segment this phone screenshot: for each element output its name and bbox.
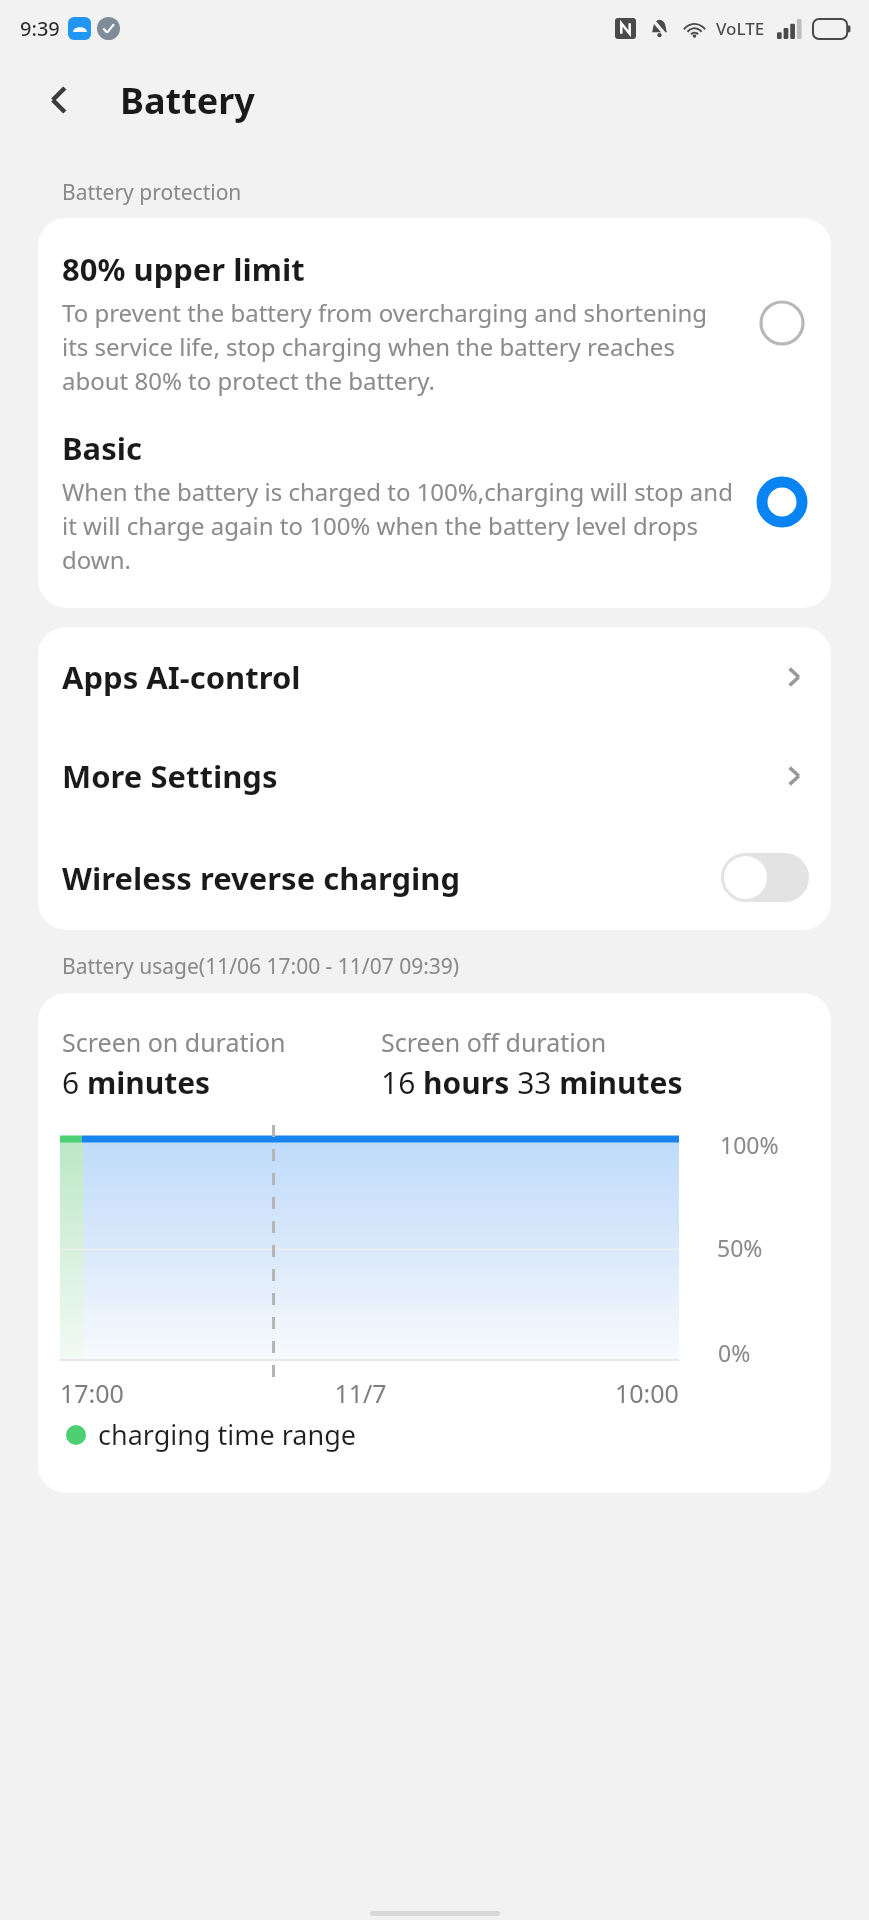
staticText: Battery (120, 76, 255, 125)
button[interactable]: 80% upper limit (38, 248, 831, 397)
button[interactable]: Basic (38, 427, 831, 576)
staticText: 0% (718, 1337, 751, 1368)
staticText: charging time range (98, 1416, 357, 1453)
staticText: 9:39 (20, 15, 60, 42)
staticText: Screen on duration (62, 1025, 286, 1059)
button[interactable]: Back (34, 74, 86, 126)
staticText: 11/7 (60, 1376, 661, 1410)
staticText: When the battery is charged to 100%,char… (62, 475, 739, 576)
button[interactable]: More Settings (38, 726, 831, 825)
staticText: Screen off duration (381, 1025, 607, 1059)
staticText: Battery usage(11/06 17:00 - 11/07 09:39) (62, 952, 829, 981)
staticText: 6 minutes (62, 1062, 211, 1103)
staticText: 16 hours 33 minutes (381, 1062, 683, 1103)
staticText: More Settings (62, 755, 783, 797)
staticText: Apps AI-control (62, 656, 783, 698)
staticText: 80% upper limit (62, 248, 305, 290)
staticText: VoLTE (716, 17, 765, 40)
staticText: 100% (720, 1129, 779, 1160)
staticText: 17:00 (60, 1376, 124, 1410)
staticText: Wireless reverse charging (62, 857, 721, 899)
button[interactable]: Wireless reverse charging (38, 825, 831, 930)
staticText: Basic (62, 427, 143, 469)
staticText: 50% (717, 1232, 763, 1263)
staticText: 10:00 (615, 1376, 679, 1410)
staticText: Battery protection (62, 178, 829, 207)
staticText: To prevent the battery from overcharging… (62, 296, 739, 397)
button[interactable]: Apps AI-control (38, 627, 831, 726)
